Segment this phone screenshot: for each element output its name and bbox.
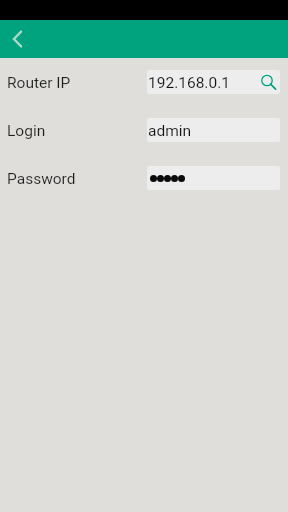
button[interactable] <box>147 166 280 190</box>
button[interactable]: Search <box>257 71 280 94</box>
button[interactable]: admin <box>147 118 280 142</box>
button[interactable]: Navigate up <box>0 20 38 58</box>
button[interactable]: 192.168.0.1 <box>147 70 280 94</box>
staticText: Router IP <box>7 74 71 92</box>
staticText: Login <box>7 122 46 140</box>
staticText: Password <box>7 170 76 188</box>
staticText: 192.168.0.1 <box>148 74 230 92</box>
staticText: admin <box>148 122 192 140</box>
